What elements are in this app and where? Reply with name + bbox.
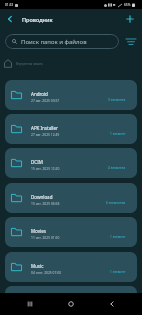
staticText: 65%	[124, 3, 131, 7]
staticText: 3 элемента	[108, 98, 126, 102]
button[interactable]: Последние приложения	[19, 293, 41, 315]
button[interactable]: Music	[5, 252, 137, 282]
staticText: 1 элемент	[110, 270, 126, 274]
button[interactable]: Notifications	[5, 286, 137, 315]
button[interactable]	[4, 59, 12, 68]
staticText: 27 авг. 2025 12:49	[31, 132, 60, 136]
staticText: 6 элементов	[106, 201, 126, 205]
button[interactable]: Movies	[5, 217, 137, 247]
button[interactable]: DCIM	[5, 148, 137, 178]
staticText: Поиск папок и файлов	[21, 38, 87, 46]
button[interactable]: Добавить	[120, 9, 140, 29]
staticText: Music	[31, 263, 44, 269]
staticText: 27 авг. 2025 03:57	[31, 98, 60, 102]
staticText: 15 окт. 2025 06:58	[31, 201, 60, 205]
button[interactable]: Главный экран	[60, 293, 82, 315]
staticText: 1 элемент	[110, 132, 126, 136]
staticText: Movies	[31, 228, 46, 234]
button[interactable]: Назад	[0, 9, 20, 29]
staticText: 1 элемент	[110, 235, 126, 239]
staticText: Notifications	[31, 297, 58, 303]
staticText: 4 элемента	[108, 166, 126, 170]
staticText: APK Installer	[31, 125, 58, 131]
staticText: 11 окт. 2025 01:50	[31, 235, 60, 239]
button[interactable]: Android	[5, 80, 137, 110]
button[interactable]: Download	[5, 183, 137, 213]
staticText: 15 окт. 2025 12:20	[31, 166, 60, 170]
staticText: 01:23	[5, 3, 14, 7]
staticText: Внутренняя память	[16, 62, 43, 66]
staticText: 04 сент. 2025 07:00	[31, 304, 62, 308]
staticText: Android	[31, 91, 48, 97]
staticText: 04 сент. 2025 07:00	[31, 270, 62, 274]
button[interactable]: Поиск папок и файлов	[5, 34, 119, 49]
staticText: Проводник	[22, 16, 53, 23]
staticText: Download	[31, 194, 53, 200]
staticText: DCIM	[31, 159, 43, 165]
button[interactable]: Назад	[101, 293, 123, 315]
button[interactable]: Фильтр	[123, 34, 138, 49]
button[interactable]: APK Installer	[5, 114, 137, 144]
staticText: 1 элемент	[110, 304, 126, 308]
